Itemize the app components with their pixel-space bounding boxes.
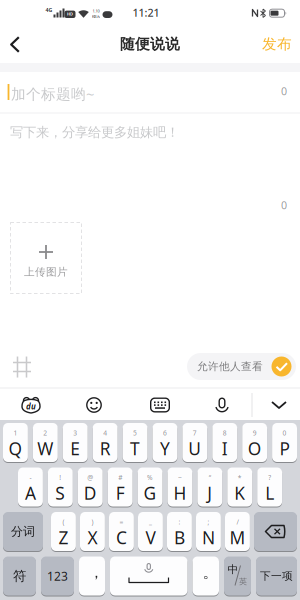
staticText: * — [238, 473, 242, 482]
button[interactable]: 1 — [3, 422, 28, 462]
button[interactable]: 9 — [242, 422, 267, 462]
button[interactable]: _ — [138, 511, 163, 551]
button[interactable]: : — [167, 511, 192, 551]
staticText: 123 — [47, 568, 68, 584]
button[interactable]: / — [225, 511, 250, 551]
button[interactable]: * — [227, 467, 252, 507]
button[interactable]: Voice input — [208, 390, 236, 419]
button[interactable]: 4 — [93, 422, 118, 462]
button[interactable]: 。 — [192, 556, 219, 596]
staticText: 0 — [281, 84, 287, 98]
button[interactable]: 5 — [123, 422, 147, 462]
staticText: - — [29, 473, 31, 482]
staticText: T — [130, 437, 140, 460]
staticText: / — [236, 518, 238, 526]
staticText: V — [145, 526, 155, 549]
staticText: Q — [8, 437, 22, 460]
button[interactable]: 2 — [33, 422, 58, 462]
staticText: 允许他人查看 — [197, 360, 263, 373]
staticText: 0 — [281, 198, 287, 212]
staticText: 英 — [239, 577, 247, 586]
staticText: H — [173, 481, 186, 504]
button[interactable]: Dismiss keyboard — [264, 394, 294, 416]
button[interactable]: Upload photo — [10, 222, 82, 294]
button[interactable]: 中 — [224, 556, 251, 596]
button[interactable]: “ — [197, 467, 222, 507]
staticText: 2 — [43, 429, 47, 437]
button[interactable]: Add topic — [7, 350, 37, 383]
button[interactable]: # — [108, 467, 133, 507]
button[interactable]: 7 — [182, 422, 207, 462]
staticText: 11:21 — [132, 5, 159, 20]
staticText: ~ — [178, 473, 182, 482]
staticText: ( — [62, 518, 64, 526]
staticText: B — [174, 526, 185, 549]
staticText: C — [116, 526, 127, 549]
staticText: E — [70, 437, 80, 460]
staticText: P — [279, 437, 289, 460]
button[interactable]: @ — [78, 467, 103, 507]
staticText: 。 — [203, 563, 218, 581]
staticText: U — [188, 437, 201, 460]
staticText: KB/s — [92, 14, 100, 19]
staticText: 4G — [45, 6, 52, 14]
button[interactable]: 发布 — [255, 29, 299, 59]
staticText: 加个标题哟~ — [11, 84, 94, 103]
button[interactable]: 符 — [3, 556, 36, 596]
staticText: 7 — [193, 429, 197, 437]
button[interactable]: 8 — [212, 422, 237, 462]
staticText: 分词 — [11, 524, 35, 539]
staticText: ; — [207, 518, 209, 526]
button[interactable]: ， — [79, 556, 105, 596]
staticText: F — [116, 481, 125, 504]
button[interactable]: Back — [0, 0, 300, 600]
staticText: O — [248, 437, 262, 460]
staticText: ? — [268, 473, 271, 482]
button[interactable]: Space — [110, 556, 187, 596]
staticText: 下一项 — [260, 569, 293, 582]
button[interactable]: % — [138, 467, 162, 507]
button[interactable]: 3 — [63, 422, 88, 462]
staticText: D — [84, 481, 97, 504]
staticText: 发布 — [262, 35, 292, 53]
button[interactable]: ? — [257, 467, 282, 507]
button[interactable]: ) — [80, 511, 105, 551]
button[interactable]: 6 — [152, 422, 177, 462]
staticText: N — [202, 526, 215, 549]
staticText: X — [87, 526, 97, 549]
button[interactable]: Baidu IME — [15, 390, 46, 420]
staticText: 9 — [253, 429, 257, 437]
button[interactable]: 123 — [41, 556, 74, 596]
staticText: ) — [91, 518, 93, 526]
staticText: 6 — [163, 429, 167, 437]
staticText: Z — [58, 526, 68, 549]
staticText: 符 — [13, 568, 26, 584]
staticText: S — [55, 481, 65, 504]
button[interactable]: ! — [48, 467, 73, 507]
button[interactable]: 分词 — [3, 511, 43, 551]
button[interactable]: ( — [51, 511, 76, 551]
staticText: % — [147, 473, 153, 482]
button[interactable]: Keyboard — [144, 391, 176, 418]
button[interactable]: 下一项 — [256, 556, 297, 596]
button[interactable]: 0 — [272, 422, 297, 462]
staticText: _ — [149, 518, 152, 526]
staticText: Y — [160, 437, 170, 460]
staticText: M — [229, 526, 245, 549]
staticText: L — [265, 481, 274, 504]
staticText: @ — [87, 473, 93, 482]
button[interactable]: - — [18, 467, 43, 507]
button[interactable]: ; — [196, 511, 221, 551]
button[interactable]: 允许他人查看 — [187, 353, 296, 380]
staticText: : — [178, 518, 180, 526]
staticText: W — [37, 437, 53, 460]
staticText: = — [119, 518, 123, 526]
staticText: K — [234, 481, 245, 504]
staticText: 3 — [73, 429, 77, 437]
staticText: ! — [59, 473, 61, 482]
button[interactable]: = — [109, 511, 134, 551]
button[interactable]: Emoji — [80, 391, 108, 419]
button[interactable]: Delete — [254, 511, 297, 551]
button[interactable]: ~ — [167, 467, 192, 507]
staticText: I — [222, 437, 228, 460]
